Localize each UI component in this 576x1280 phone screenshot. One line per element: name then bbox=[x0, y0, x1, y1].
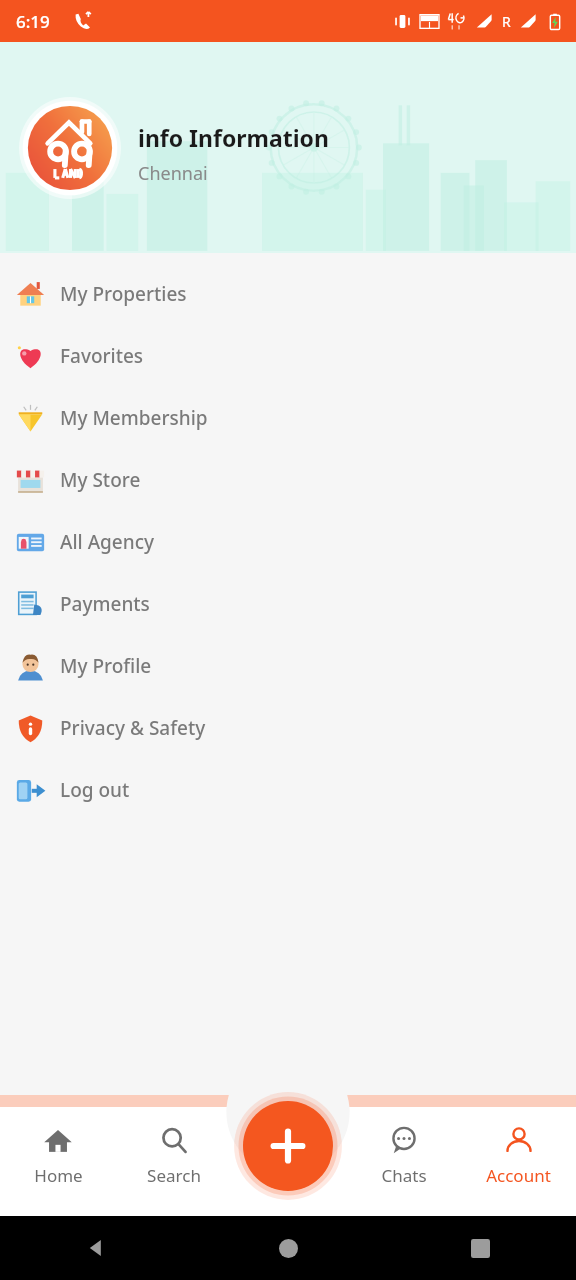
button[interactable]: Recent apps bbox=[460, 1228, 500, 1268]
button[interactable]: Account bbox=[461, 1107, 576, 1228]
button[interactable]: My Store bbox=[0, 449, 576, 511]
staticText: My Store bbox=[60, 467, 141, 493]
button[interactable]: Back bbox=[76, 1228, 116, 1268]
button[interactable] bbox=[18, 96, 122, 200]
staticText: info Information bbox=[138, 122, 329, 153]
button[interactable]: Chats bbox=[346, 1107, 461, 1228]
button[interactable]: Log out bbox=[0, 759, 576, 821]
button[interactable]: Home bbox=[268, 1228, 308, 1268]
staticText: All Agency bbox=[60, 529, 155, 555]
button[interactable]: All Agency bbox=[0, 511, 576, 573]
staticText: 6:19 bbox=[16, 10, 50, 33]
staticText: My Membership bbox=[60, 405, 208, 431]
button[interactable]: Payments bbox=[0, 573, 576, 635]
staticText: Privacy & Safety bbox=[60, 715, 206, 741]
button[interactable]: Favorites bbox=[0, 325, 576, 387]
staticText: Favorites bbox=[60, 343, 144, 369]
staticText: Log out bbox=[60, 777, 130, 803]
staticText: My Profile bbox=[60, 653, 152, 679]
button[interactable]: Post bbox=[231, 1107, 346, 1228]
staticText: Home bbox=[34, 1164, 83, 1187]
staticText: Payments bbox=[60, 591, 150, 617]
button[interactable]: My Membership bbox=[0, 387, 576, 449]
button[interactable]: Search bbox=[116, 1107, 231, 1228]
staticText: Account bbox=[486, 1164, 551, 1187]
staticText: Search bbox=[147, 1164, 201, 1187]
button[interactable]: Post new listing bbox=[243, 1101, 333, 1191]
staticText: My Properties bbox=[60, 281, 187, 307]
staticText: R bbox=[502, 12, 511, 31]
button[interactable]: Privacy & Safety bbox=[0, 697, 576, 759]
staticText: Chennai bbox=[138, 161, 208, 186]
button[interactable]: Home bbox=[0, 1107, 116, 1228]
staticText: Chats bbox=[381, 1164, 427, 1187]
button[interactable]: My Profile bbox=[0, 635, 576, 697]
button[interactable]: My Properties bbox=[0, 263, 576, 325]
